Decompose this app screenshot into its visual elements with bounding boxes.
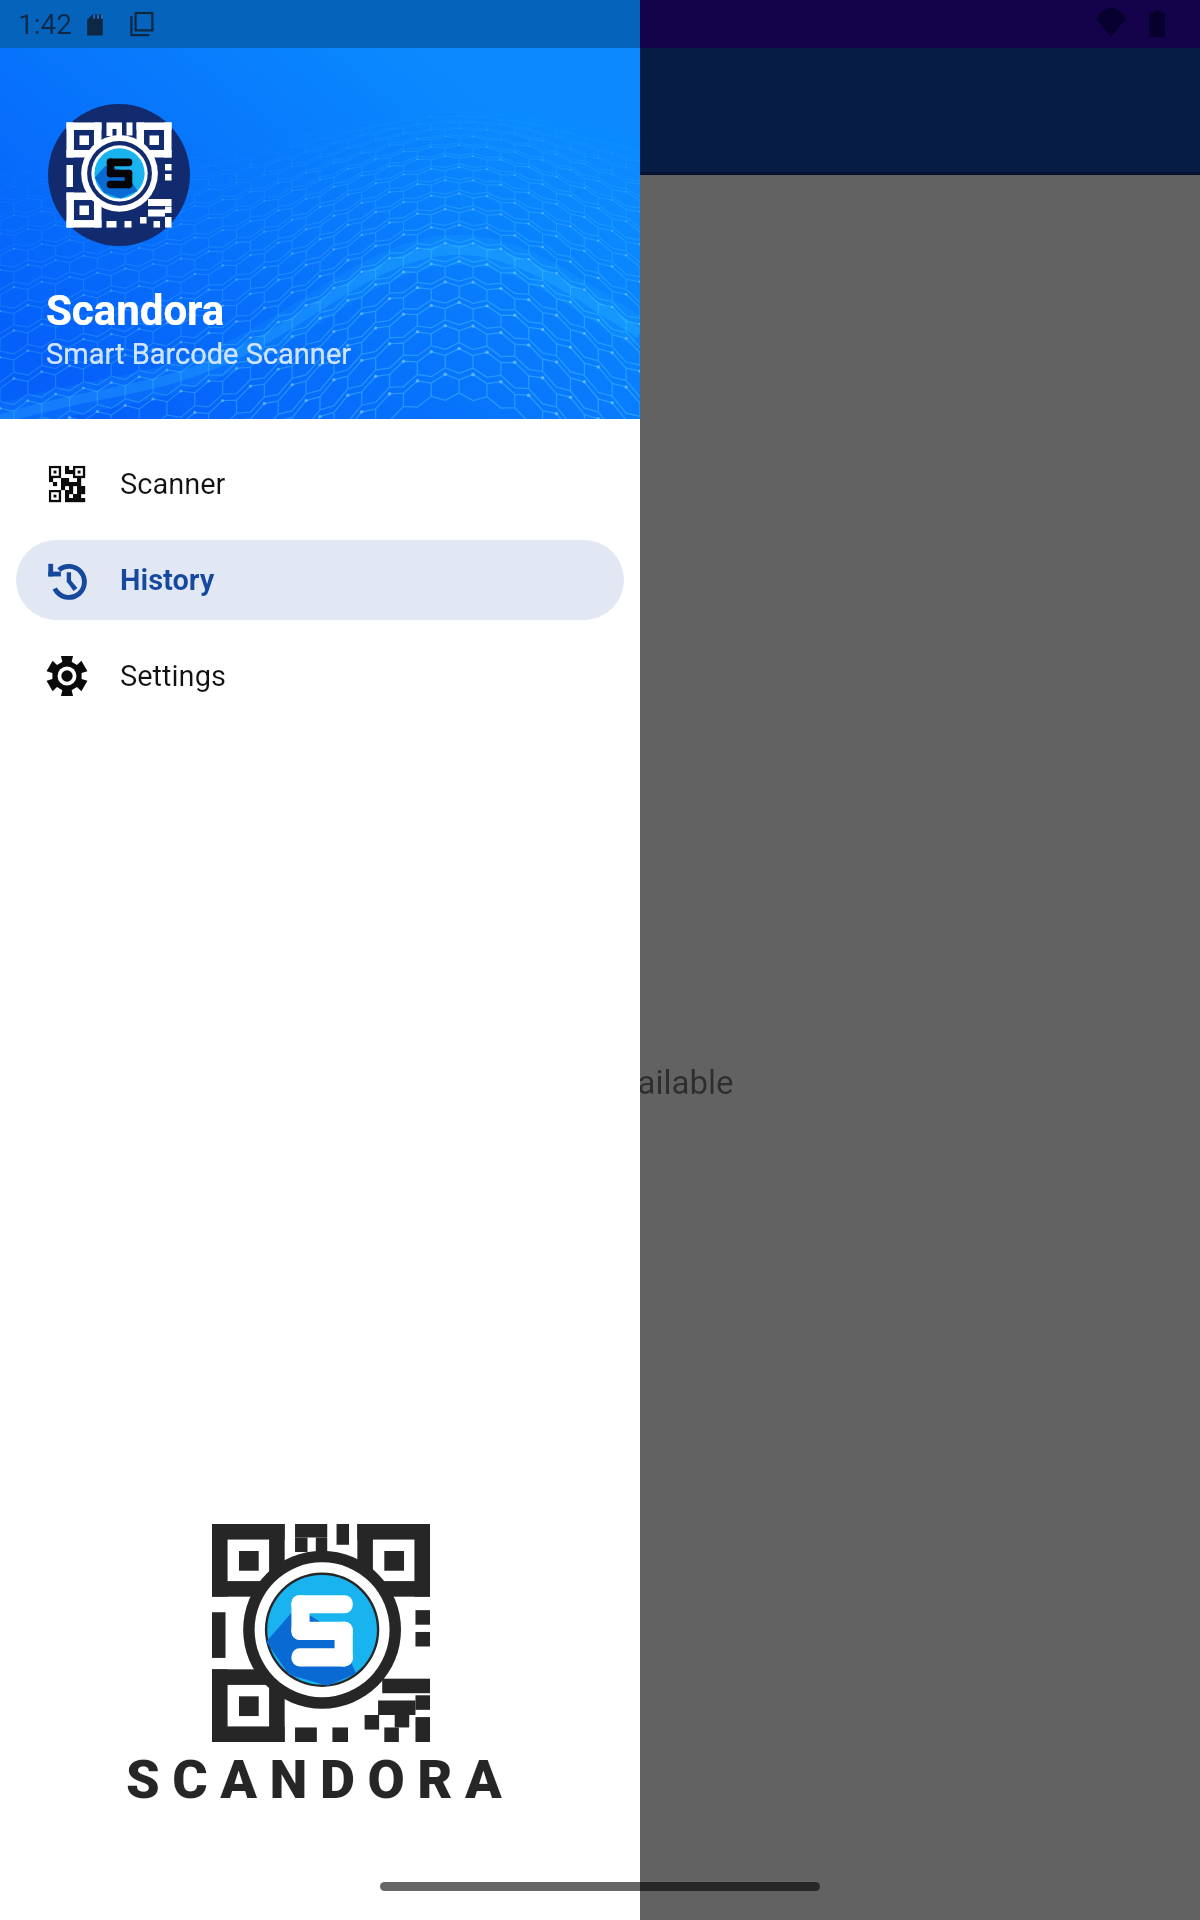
- staticText: 1:42: [18, 8, 72, 41]
- button[interactable]: Settings: [16, 636, 624, 716]
- staticText: Scandora: [46, 286, 225, 335]
- button[interactable]: Scanner: [16, 444, 624, 524]
- staticText: Scanner: [120, 467, 226, 501]
- button[interactable]: Close navigation drawer: [0, 175, 1200, 1920]
- staticText: SCANDORA: [126, 1748, 515, 1811]
- staticText: Smart Barcode Scanner: [46, 337, 352, 371]
- staticText: No scan history available: [367, 1063, 734, 1102]
- button[interactable]: History: [16, 540, 624, 620]
- staticText: Settings: [120, 659, 226, 693]
- staticText: History: [120, 563, 215, 597]
